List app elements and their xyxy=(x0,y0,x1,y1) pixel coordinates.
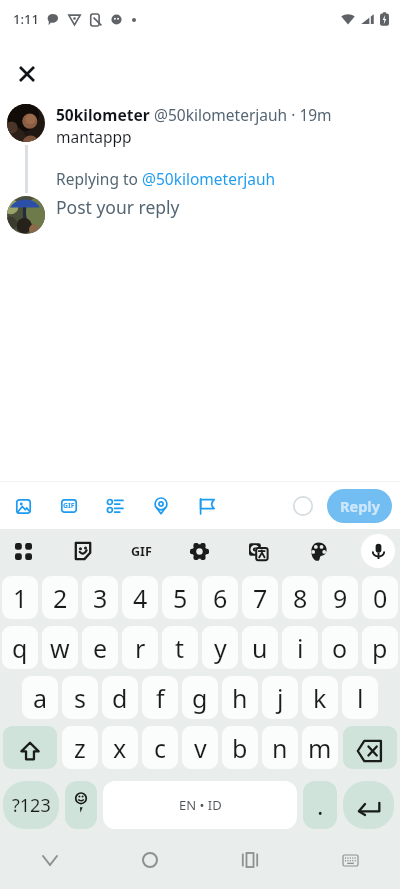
button[interactable]: s xyxy=(62,676,98,719)
button[interactable]: f xyxy=(142,676,178,719)
staticText: q xyxy=(12,631,28,665)
button[interactable]: Location xyxy=(146,491,176,521)
staticText: Reply xyxy=(340,496,380,516)
button[interactable]: Theme xyxy=(301,534,335,568)
button[interactable]: p xyxy=(362,626,398,669)
staticText: 9 xyxy=(333,581,348,615)
button[interactable]: 4 xyxy=(122,576,158,619)
button[interactable]: Hide keyboard xyxy=(32,842,68,878)
staticText: g xyxy=(192,681,208,715)
staticText: t xyxy=(175,631,185,665)
button[interactable]: 6 xyxy=(202,576,238,619)
button[interactable]: q xyxy=(2,626,38,669)
button[interactable]: Translate xyxy=(241,534,275,568)
staticText: EN • ID xyxy=(179,796,222,814)
button[interactable]: Backspace xyxy=(343,726,397,769)
button[interactable]: Home xyxy=(132,842,168,878)
staticText: a xyxy=(33,681,48,715)
button[interactable]: Enter xyxy=(343,781,394,829)
button[interactable]: 1 xyxy=(2,576,38,619)
staticText: z xyxy=(74,731,86,765)
button[interactable]: h xyxy=(222,676,258,719)
button[interactable]: i xyxy=(282,626,318,669)
button[interactable]: e xyxy=(82,626,118,669)
button[interactable]: 2 xyxy=(42,576,78,619)
button[interactable]: EN • ID xyxy=(103,781,297,829)
staticText: 1:11 xyxy=(13,10,39,28)
button[interactable]: b xyxy=(222,726,258,769)
button[interactable]: Settings xyxy=(182,534,216,568)
button[interactable]: 0 xyxy=(362,576,398,619)
staticText: m xyxy=(308,731,332,765)
button[interactable]: a xyxy=(22,676,58,719)
staticText: . xyxy=(317,789,324,822)
staticText: 3 xyxy=(93,581,108,615)
staticText: s xyxy=(74,681,86,715)
staticText: 6 xyxy=(213,581,228,615)
button[interactable]: z xyxy=(62,726,98,769)
button[interactable]: ?123 xyxy=(3,781,59,829)
button[interactable]: Poll xyxy=(100,491,130,521)
staticText: n xyxy=(272,731,288,765)
button[interactable]: . xyxy=(303,781,337,829)
button[interactable]: GIF keyboard xyxy=(126,536,156,566)
button[interactable]: Community xyxy=(192,491,222,521)
button[interactable]: Stickers xyxy=(66,534,100,568)
staticText: u xyxy=(252,631,268,665)
button[interactable]: d xyxy=(102,676,138,719)
button[interactable]: Emoji xyxy=(65,781,97,829)
staticText: Replying to xyxy=(56,168,142,189)
staticText: b xyxy=(232,731,248,765)
button[interactable]: k xyxy=(302,676,338,719)
button[interactable]: Voice input xyxy=(361,534,395,568)
staticText: x xyxy=(113,731,127,765)
staticText: w xyxy=(50,631,70,665)
button[interactable]: 5 xyxy=(162,576,198,619)
button[interactable]: 8 xyxy=(282,576,318,619)
button[interactable]: j xyxy=(262,676,298,719)
button[interactable]: Change keyboard xyxy=(332,842,368,878)
button[interactable]: u xyxy=(242,626,278,669)
staticText: Post your reply xyxy=(56,195,180,219)
staticText: 1 xyxy=(13,581,28,615)
button[interactable]: o xyxy=(322,626,358,669)
button[interactable]: x xyxy=(102,726,138,769)
button[interactable]: l xyxy=(342,676,378,719)
staticText: 4 xyxy=(133,581,148,615)
button[interactable]: g xyxy=(182,676,218,719)
staticText: r xyxy=(135,631,146,665)
button[interactable]: m xyxy=(302,726,338,769)
staticText: e xyxy=(93,631,108,665)
button[interactable]: c xyxy=(142,726,178,769)
button[interactable]: Add photo xyxy=(8,491,38,521)
staticText: 50kilometer xyxy=(56,104,150,125)
button[interactable]: v xyxy=(182,726,218,769)
button[interactable]: Apps xyxy=(6,534,40,568)
button[interactable]: 3 xyxy=(82,576,118,619)
button[interactable]: y xyxy=(202,626,238,669)
button[interactable]: Reply xyxy=(327,489,392,523)
button[interactable]: Close xyxy=(9,56,45,92)
button[interactable]: Recent apps xyxy=(232,842,268,878)
button[interactable]: 7 xyxy=(242,576,278,619)
staticText: h xyxy=(232,681,248,715)
staticText: 5 xyxy=(173,581,188,615)
button[interactable]: 9 xyxy=(322,576,358,619)
staticText: c xyxy=(154,731,167,765)
staticText: o xyxy=(332,631,348,665)
button[interactable]: Shift xyxy=(3,726,57,769)
staticText: i xyxy=(297,631,304,665)
staticText: y xyxy=(214,631,227,665)
button[interactable]: Add GIF xyxy=(54,491,84,521)
staticText: @50kilometerjauh xyxy=(142,168,276,189)
staticText: 2 xyxy=(53,581,68,615)
button[interactable]: r xyxy=(122,626,158,669)
staticText: l xyxy=(357,681,364,715)
button[interactable]: t xyxy=(162,626,198,669)
staticText: mantappp xyxy=(56,126,132,147)
staticText: k xyxy=(313,681,327,715)
button[interactable]: w xyxy=(42,626,78,669)
button[interactable]: n xyxy=(262,726,298,769)
staticText: f xyxy=(156,681,165,715)
staticText: j xyxy=(277,681,284,715)
